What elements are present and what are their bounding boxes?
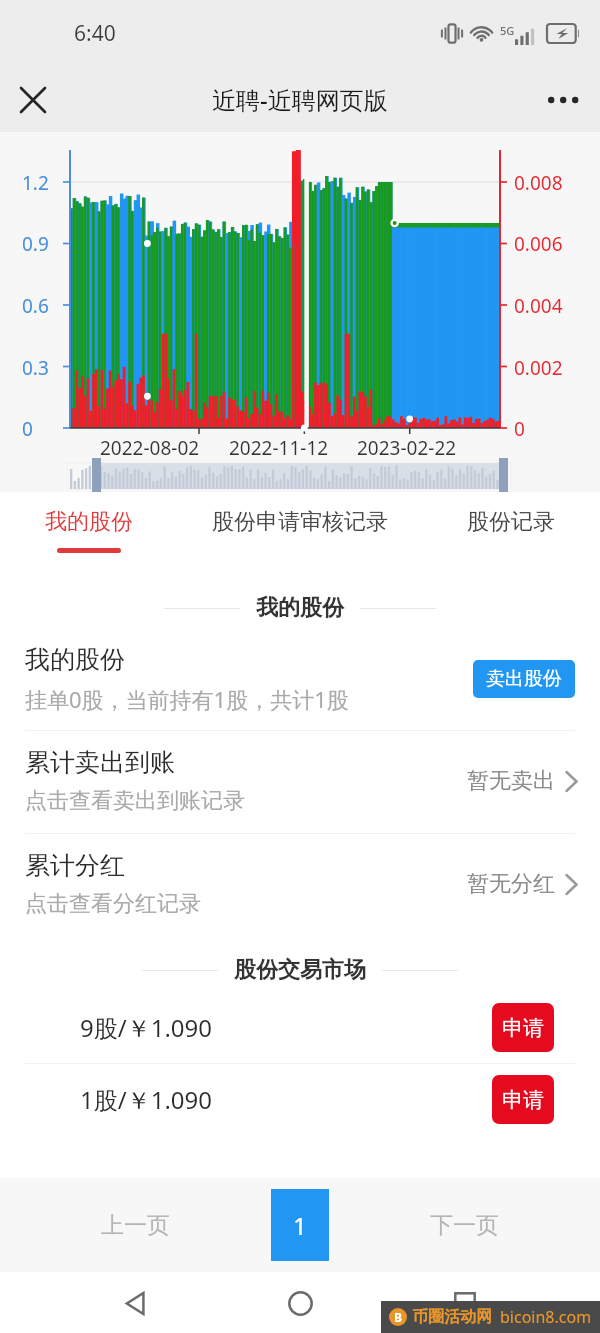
button[interactable]: 申请 [492,1075,554,1124]
staticText: 申请 [502,1087,544,1113]
staticText: 0.004 [514,293,563,319]
staticText: 0.6 [22,293,49,319]
staticText: 5G [500,23,515,38]
staticText: 0.002 [514,355,563,381]
staticText: 0.008 [514,170,563,196]
staticText: 我的股份 [45,508,133,536]
staticText: 1 [293,1209,307,1242]
staticText: 我的股份 [25,644,125,675]
staticText: 2022-11-12 [229,435,329,461]
staticText: 点击查看分红记录 [25,890,201,918]
button[interactable]: More options [538,73,592,127]
staticText: 0.9 [22,231,49,257]
staticText: 1.2 [22,170,49,196]
button[interactable]: Recents [436,1274,494,1332]
button[interactable]: 我的股份 [0,630,600,730]
staticText: 挂单0股，当前持有1股，共计1股 [25,684,349,714]
button[interactable]: 我的股份 [0,492,177,576]
staticText: 0 [22,416,33,442]
button[interactable]: 申请 [492,1003,554,1052]
staticText: 我的股份 [256,594,344,622]
staticText: 近聘-近聘网页版 [212,83,388,116]
staticText: 暂无分红 [467,870,555,898]
staticText: 股份交易市场 [234,956,366,984]
button[interactable]: 1 [271,1189,329,1261]
staticText: 上一页 [101,1211,170,1240]
button[interactable]: 累计卖出到账 [0,731,600,833]
staticText: 9股/￥1.090 [80,1011,492,1044]
staticText: 0 [514,416,525,442]
staticText: 累计卖出到账 [25,747,175,778]
staticText: 2022-08-02 [100,435,200,461]
staticText: 暂无卖出 [467,767,555,795]
button[interactable]: 累计分红 [0,834,600,936]
staticText: bicoin8.com [500,1306,592,1328]
staticText: 1股/￥1.090 [80,1083,492,1116]
staticText: 币圈活动网 [412,1307,492,1327]
staticText: 股份记录 [467,508,555,536]
button[interactable]: Back [107,1274,165,1332]
staticText: B [394,1309,402,1325]
staticText: 股份申请审核记录 [212,508,388,536]
staticText: 0.3 [22,355,49,381]
button[interactable]: Close [6,73,60,127]
staticText: 6:40 [74,19,116,48]
button[interactable]: 股份申请审核记录 [177,492,422,576]
button[interactable]: 下一页 [329,1178,600,1272]
button[interactable]: Home [271,1274,329,1332]
button[interactable]: 上一页 [0,1178,271,1272]
staticText: 下一页 [430,1211,499,1240]
button[interactable]: 卖出股份 [473,660,575,698]
staticText: 点击查看卖出到账记录 [25,787,245,815]
staticText: 申请 [502,1015,544,1041]
staticText: 0.006 [514,231,563,257]
button[interactable]: 股份记录 [422,492,600,576]
staticText: 卖出股份 [486,667,562,691]
staticText: 2023-02-22 [357,435,457,461]
staticText: 累计分红 [25,850,125,881]
